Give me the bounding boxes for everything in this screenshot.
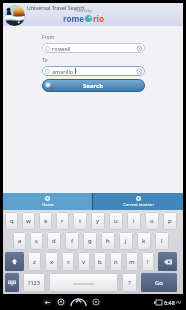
staticText: f: [71, 237, 74, 245]
staticText: Powered by:: [75, 9, 93, 13]
staticText: k: [142, 237, 146, 245]
button[interactable]: j: [119, 232, 133, 250]
staticText: PM: [176, 300, 182, 305]
button[interactable]: Recents: [91, 298, 101, 306]
staticText: l: [161, 237, 163, 245]
staticText: Home: [42, 202, 54, 207]
staticText: z: [33, 258, 36, 266]
staticText: !: [147, 258, 149, 266]
button[interactable]: amarillo: [42, 66, 145, 76]
button[interactable]: n: [110, 252, 122, 271]
staticText: e: [44, 217, 48, 225]
staticText: i: [133, 217, 135, 225]
staticText: Search: [83, 82, 104, 90]
button[interactable]: d: [47, 232, 61, 250]
button[interactable]: Go: [141, 273, 177, 292]
button[interactable]: Back: [42, 298, 52, 306]
staticText: r: [61, 217, 64, 225]
staticText: x: [50, 258, 54, 266]
button[interactable]: y: [91, 212, 105, 230]
staticText: Go: [155, 279, 163, 287]
staticText: a: [18, 237, 22, 245]
button[interactable]: b: [94, 252, 106, 271]
staticText: c: [67, 258, 70, 266]
staticText: s: [35, 237, 38, 245]
button[interactable]: Notifications handle: [70, 296, 87, 308]
button[interactable]: f: [65, 232, 79, 250]
staticText: To: [42, 57, 48, 64]
staticText: d: [52, 237, 56, 245]
staticText: h: [106, 237, 110, 245]
button[interactable]: a: [13, 232, 26, 250]
button[interactable]: roswell: [42, 43, 145, 53]
staticText: g: [88, 237, 92, 245]
button[interactable]: u: [109, 212, 123, 230]
staticText: ?123: [28, 279, 40, 286]
button[interactable]: c: [62, 252, 74, 271]
button[interactable]: ?123: [23, 273, 45, 292]
staticText: rio: [93, 13, 104, 24]
button[interactable]: !: [142, 252, 154, 271]
button[interactable]: [49, 273, 118, 292]
staticText: n: [114, 258, 118, 266]
staticText: ?: [128, 279, 131, 287]
button[interactable]: z: [28, 252, 41, 271]
button[interactable]: r: [56, 212, 69, 230]
button[interactable]: m: [126, 252, 138, 271]
button[interactable]: w: [22, 212, 35, 230]
button[interactable]: Hide keyboard: [5, 273, 19, 292]
button[interactable]: o: [145, 212, 159, 230]
button[interactable]: q: [5, 212, 18, 230]
button[interactable]: Search: [42, 79, 145, 92]
button[interactable]: Home: [56, 298, 66, 306]
staticText: m: [129, 258, 135, 266]
staticText: Current location: [123, 202, 154, 207]
staticText: amarillo: [52, 68, 74, 75]
button[interactable]: s: [30, 232, 43, 250]
button[interactable]: Shift: [5, 252, 24, 271]
staticText: w: [26, 217, 31, 225]
button[interactable]: p: [163, 212, 177, 230]
button[interactable]: i: [127, 212, 141, 230]
button[interactable]: Backspace: [158, 252, 177, 271]
staticText: t: [79, 217, 82, 225]
button[interactable]: k: [137, 232, 151, 250]
staticText: roswell: [52, 45, 71, 52]
staticText: rome: [63, 13, 84, 24]
staticText: u: [114, 217, 118, 225]
button[interactable]: Home: [3, 193, 92, 210]
staticText: q: [10, 217, 14, 225]
button[interactable]: x: [45, 252, 58, 271]
staticText: v: [82, 258, 86, 266]
staticText: Universal Travel Search: [27, 4, 85, 11]
staticText: p: [168, 217, 172, 225]
button[interactable]: g: [83, 232, 97, 250]
button[interactable]: e: [39, 212, 52, 230]
staticText: b: [98, 258, 102, 266]
staticText: o: [150, 217, 154, 225]
button[interactable]: l: [155, 232, 169, 250]
button[interactable]: t: [73, 212, 87, 230]
button[interactable]: v: [78, 252, 90, 271]
button[interactable]: h: [101, 232, 115, 250]
button[interactable]: Current location: [93, 193, 183, 210]
staticText: j: [125, 237, 127, 245]
staticText: From: [42, 34, 55, 41]
staticText: 6:48: [164, 299, 175, 306]
staticText: y: [96, 217, 100, 225]
button[interactable]: ?: [122, 273, 137, 292]
